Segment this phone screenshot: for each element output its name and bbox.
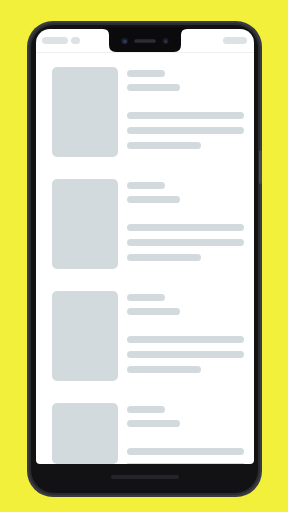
button[interactable] xyxy=(36,277,254,389)
button[interactable] xyxy=(36,53,254,165)
button[interactable] xyxy=(36,389,254,464)
button[interactable] xyxy=(36,165,254,277)
